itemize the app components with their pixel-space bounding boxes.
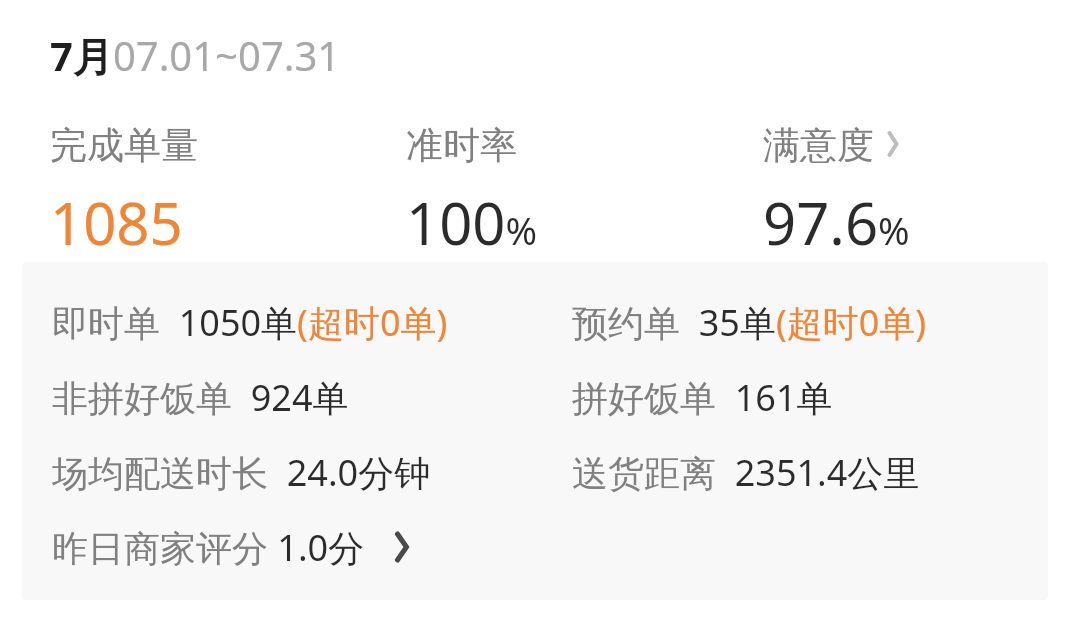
staticText: 准时率 [406,122,517,169]
staticText: 100% [406,183,538,262]
button[interactable]: 昨日商家评分 1.0分 [52,523,415,571]
staticText: 送货距离 2351.4公里 [572,448,920,497]
staticText: 即时单 1050单(超时0单) [52,298,448,347]
staticText: 预约单 35单(超时0单) [572,298,927,347]
staticText: 7月07.01~07.31 [50,28,341,83]
staticText: 满意度 [763,122,874,169]
staticText: 97.6% [763,183,910,262]
staticText: 完成单量 [50,122,198,169]
staticText: 昨日商家评分 1.0分 [52,523,365,571]
staticText: 1085 [50,183,183,262]
staticText: 拼好饭单 161单 [572,373,833,422]
button[interactable]: 7月07.01~07.31 [50,28,341,83]
staticText: 非拼好饭单 924单 [52,373,349,422]
staticText: 场均配送时长 24.0分钟 [52,448,431,497]
button[interactable]: 满意度 [763,122,910,262]
